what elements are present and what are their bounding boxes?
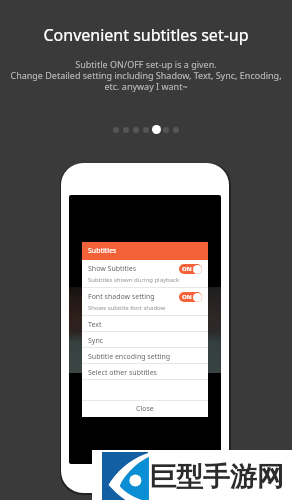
button[interactable]: Page 4 <box>141 124 151 135</box>
button[interactable]: Text <box>82 316 208 332</box>
button[interactable]: Page 6 <box>161 124 171 135</box>
staticText: Subtitles <box>88 246 117 256</box>
staticText: Close <box>136 404 154 414</box>
button[interactable]: Page 2 <box>121 124 131 135</box>
button[interactable]: Page 3 <box>131 124 141 135</box>
staticText: 巨型手游网 <box>149 460 284 494</box>
staticText: Font shadow setting <box>88 292 155 302</box>
staticText: Shows subtitle font shadow <box>88 304 166 312</box>
button[interactable]: Show Subtitles <box>82 260 208 288</box>
staticText: Subtitle encoding setting <box>88 352 171 362</box>
button[interactable]: Subtitle encoding setting <box>82 348 208 364</box>
staticText: Show Subtitles <box>88 264 137 274</box>
button[interactable]: Page 7 <box>171 124 181 135</box>
button[interactable]: Select other subtitles <box>82 364 208 380</box>
staticText: Select other subtitles <box>88 368 157 378</box>
staticText: Subtitle ON/OFF set-up is a given. Chang… <box>10 58 282 92</box>
button[interactable]: Close <box>82 401 208 417</box>
button[interactable]: Font shadow setting <box>82 288 208 316</box>
staticText: Text <box>88 320 102 330</box>
staticText: ON <box>182 265 192 273</box>
staticText: ON <box>182 293 192 301</box>
staticText: Subtitles shown during playback <box>88 276 180 284</box>
button[interactable]: Page 5 <box>151 124 161 135</box>
button[interactable]: Page 1 <box>111 124 121 135</box>
staticText: Convenient subtitles set-up <box>43 24 249 46</box>
button[interactable]: Sync <box>82 332 208 348</box>
staticText: Sync <box>88 336 104 346</box>
